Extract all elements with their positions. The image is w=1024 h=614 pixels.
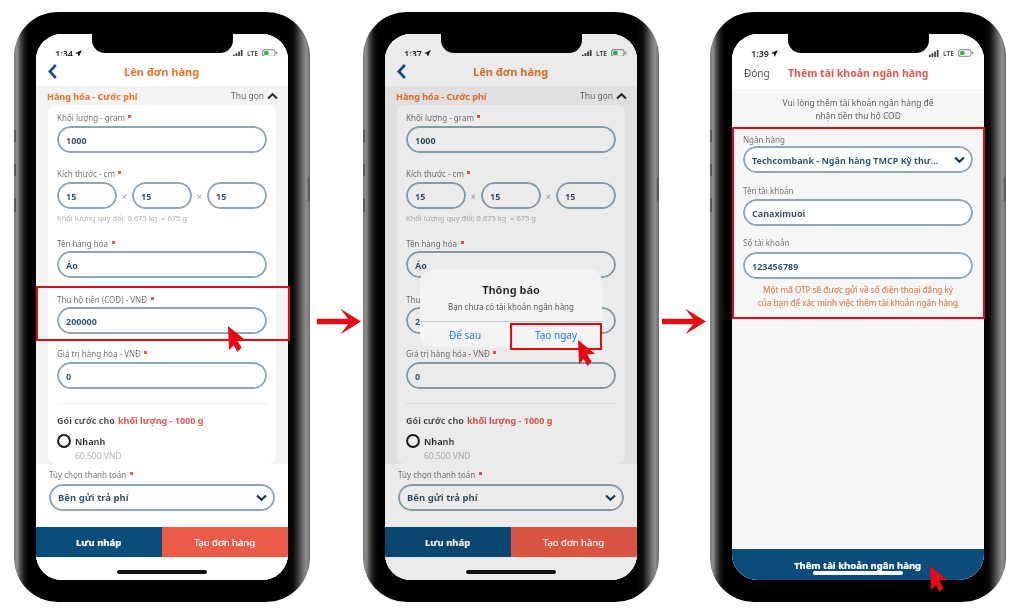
staticText: 60.500 VND (424, 450, 471, 462)
staticText: Giá trị hàng hóa - VNĐ (57, 348, 141, 359)
staticText: Một mã OTP sẽ được gửi về số điện thoại … (736, 284, 980, 309)
staticText: Áo (415, 259, 427, 271)
staticText: 1:37 (404, 47, 422, 59)
staticText: Hàng hóa - Cước phí (396, 90, 487, 102)
button[interactable]: 15 (406, 182, 466, 209)
button[interactable]: Thu gọn (580, 90, 626, 102)
button[interactable]: 200000 (57, 307, 267, 334)
button[interactable]: Nhanh (57, 434, 106, 448)
staticText: Để sau (449, 328, 482, 342)
staticText: Ngân hàng (743, 134, 785, 145)
staticText: Thu gọn (580, 90, 614, 102)
button[interactable]: Bên gửi trả phí (49, 484, 275, 511)
staticText: Khối lượng - gram (57, 112, 125, 123)
button[interactable]: Back (391, 60, 413, 82)
button[interactable]: 200000 (406, 307, 616, 334)
staticText: Thu gọn (231, 90, 265, 102)
staticText: 15 (216, 190, 227, 202)
staticText: Canaximuoi (752, 207, 806, 219)
staticText: Techcombank - Ngân hàng TMCP Kỹ thư... (752, 154, 939, 166)
staticText: Vui lòng thêm tài khoản ngân hàng để nhậ… (742, 97, 974, 122)
button[interactable]: 0 (57, 362, 267, 389)
button[interactable]: Back (42, 60, 64, 82)
staticText: × (192, 190, 207, 202)
staticText: Lưu nháp (76, 536, 122, 549)
staticText: Tên tài khoản (743, 185, 794, 196)
button[interactable]: Lưu nháp (36, 527, 162, 557)
staticText: Tên hàng hóa (57, 238, 109, 249)
staticText: Thêm tài khoản ngân hàng (788, 66, 929, 80)
staticText: Tên hàng hóa (406, 238, 458, 249)
staticText: Bên gửi trả phí (58, 491, 129, 504)
staticText: Nhanh (424, 435, 455, 447)
staticText: 200000 (415, 315, 446, 327)
staticText: Kích thước - cm (57, 168, 115, 179)
staticText: Gói cước cho (406, 414, 467, 426)
staticText: 1000 (415, 134, 436, 146)
button[interactable]: Đóng (744, 66, 770, 80)
staticText: 15 (141, 190, 152, 202)
staticText: khối lượng - 1000 g (118, 414, 204, 426)
staticText: 15 (490, 190, 501, 202)
staticText: Áo (66, 259, 78, 271)
staticText: 15 (66, 190, 77, 202)
button[interactable]: Để sau (420, 322, 510, 347)
staticText: 1:39 (751, 47, 769, 59)
button[interactable]: Tạo đơn hàng (162, 527, 288, 557)
staticText: Khối lượng - gram (406, 112, 474, 123)
staticText: Thêm tài khoản ngân hàng (794, 559, 922, 572)
button[interactable]: Techcombank - Ngân hàng TMCP Kỹ thư... (743, 146, 973, 173)
staticText: 15 (415, 190, 426, 202)
staticText: Khối lượng quy đổi: 0.675 kg = 675 g (406, 213, 536, 223)
button[interactable]: Nhanh (406, 434, 455, 448)
staticText: Giá trị hàng hóa - VNĐ (406, 348, 490, 359)
staticText: Lên đơn hàng (473, 64, 549, 79)
staticText: 0 (66, 370, 72, 382)
staticText: LTE (943, 49, 954, 58)
staticText: Tạo ngay (535, 328, 578, 342)
staticText: Kích thước - cm (406, 168, 464, 179)
staticText: × (117, 190, 132, 202)
staticText: Tạo đơn hàng (543, 536, 605, 549)
staticText: 123456789 (752, 260, 799, 272)
staticText: × (466, 190, 481, 202)
staticText: Thông báo (420, 282, 602, 297)
staticText: Tạo đơn hàng (194, 536, 256, 549)
staticText: Tùy chọn thanh toán (398, 469, 476, 480)
staticText: Lên đơn hàng (124, 64, 200, 79)
button[interactable]: Bên gửi trả phí (398, 484, 624, 511)
staticText: Bạn chưa có tài khoản ngân hàng (420, 301, 602, 312)
staticText: Lưu nháp (425, 536, 471, 549)
button[interactable]: Canaximuoi (743, 199, 973, 226)
button[interactable]: Lưu nháp (385, 527, 511, 557)
button[interactable]: 15 (57, 182, 117, 209)
staticText: Tùy chọn thanh toán (49, 469, 127, 480)
button[interactable]: 15 (556, 182, 616, 209)
staticText: × (541, 190, 556, 202)
staticText: Khối lượng quy đổi: 0.675 kg = 675 g (57, 213, 187, 223)
staticText: 1000 (66, 134, 87, 146)
button[interactable]: 1000 (406, 126, 616, 153)
staticText: 15 (565, 190, 576, 202)
button[interactable]: Áo (406, 251, 616, 278)
button[interactable]: 15 (481, 182, 541, 209)
staticText: Gói cước cho (57, 414, 118, 426)
staticText: Nhanh (75, 435, 106, 447)
button[interactable]: Tạo đơn hàng (511, 527, 637, 557)
button[interactable]: Thêm tài khoản ngân hàng (732, 549, 984, 580)
staticText: 0 (415, 370, 421, 382)
staticText: 1:34 (55, 47, 73, 59)
button[interactable]: 15 (207, 182, 267, 209)
button[interactable]: 123456789 (743, 252, 973, 279)
button[interactable]: Áo (57, 251, 267, 278)
staticText: Số tài khoản (743, 237, 790, 248)
button[interactable]: 15 (132, 182, 192, 209)
staticText: Hàng hóa - Cước phí (47, 90, 138, 102)
staticText: 60.500 VND (75, 450, 122, 462)
button[interactable]: 1000 (57, 126, 267, 153)
staticText: LTE (596, 49, 607, 58)
button[interactable]: Tạo ngay (511, 322, 602, 347)
button[interactable]: 0 (406, 362, 616, 389)
staticText: Thu hộ tiền (COD) - VNĐ (406, 294, 497, 305)
button[interactable]: Thu gọn (231, 90, 277, 102)
